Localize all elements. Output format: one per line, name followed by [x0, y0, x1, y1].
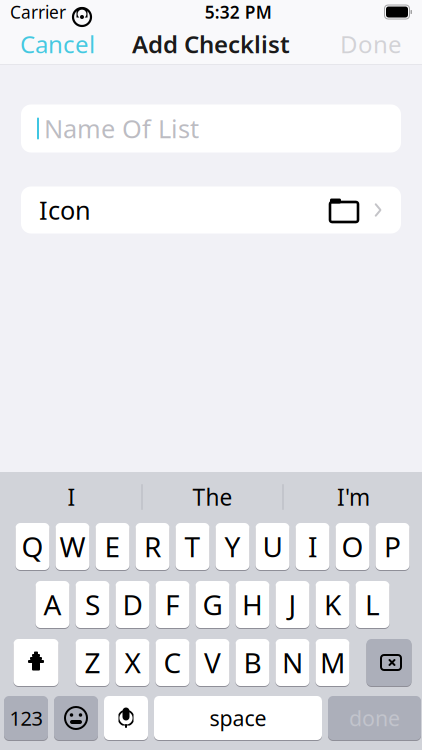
button[interactable]: The: [142, 475, 282, 519]
staticText: U: [262, 528, 282, 565]
staticText: Carrier: [10, 0, 66, 23]
staticText: Done: [340, 28, 402, 60]
button[interactable]: F: [155, 580, 189, 629]
staticText: C: [163, 644, 181, 681]
button[interactable]: M: [315, 638, 349, 687]
button[interactable]: Icon: [21, 186, 401, 233]
staticText: N: [282, 644, 303, 681]
staticText: Q: [21, 528, 43, 565]
staticText: M: [320, 644, 345, 681]
staticText: G: [202, 586, 222, 623]
staticText: 5:32 PM: [205, 0, 272, 23]
staticText: X: [124, 644, 140, 681]
staticText: O: [341, 528, 363, 565]
staticText: Icon: [39, 193, 91, 227]
staticText: I'm: [337, 482, 370, 512]
button[interactable]: E: [95, 522, 129, 571]
staticText: D: [122, 586, 142, 623]
staticText: F: [165, 586, 180, 623]
button[interactable]: H: [235, 580, 269, 629]
button[interactable]: I'm: [283, 475, 422, 519]
staticText: Z: [84, 644, 100, 681]
staticText: B: [243, 644, 261, 681]
button[interactable]: O: [335, 522, 369, 571]
button[interactable]: done: [328, 695, 421, 741]
button[interactable]: Shift: [13, 638, 58, 687]
button[interactable]: I: [295, 522, 329, 571]
button[interactable]: V: [195, 638, 229, 687]
staticText: The: [192, 482, 232, 512]
button[interactable]: Delete: [366, 638, 411, 687]
staticText: V: [204, 644, 221, 681]
staticText: A: [43, 586, 61, 623]
button[interactable]: space: [154, 695, 322, 741]
button[interactable]: Y: [215, 522, 249, 571]
staticText: done: [349, 704, 400, 732]
button[interactable]: 123: [4, 695, 48, 741]
button[interactable]: Done: [326, 24, 416, 64]
staticText: J: [288, 586, 296, 623]
staticText: S: [85, 586, 100, 623]
button[interactable]: D: [115, 580, 149, 629]
staticText: Add Checklist: [132, 28, 290, 60]
button[interactable]: P: [375, 522, 409, 571]
staticText: W: [59, 528, 85, 565]
staticText: 123: [9, 705, 42, 731]
staticText: E: [104, 528, 120, 565]
button[interactable]: Cancel: [6, 24, 109, 64]
button[interactable]: W: [55, 522, 89, 571]
staticText: I: [308, 528, 317, 565]
staticText: space: [209, 704, 266, 732]
button[interactable]: I: [1, 475, 141, 519]
button[interactable]: G: [195, 580, 229, 629]
button[interactable]: T: [175, 522, 209, 571]
staticText: I: [67, 482, 75, 512]
button[interactable]: Emoji: [54, 695, 98, 741]
button[interactable]: J: [275, 580, 309, 629]
button[interactable]: Q: [15, 522, 49, 571]
button[interactable]: S: [75, 580, 109, 629]
staticText: R: [144, 528, 161, 565]
staticText: H: [242, 586, 263, 623]
button[interactable]: B: [235, 638, 269, 687]
button[interactable]: C: [155, 638, 189, 687]
staticText: T: [184, 528, 200, 565]
staticText: Y: [224, 528, 240, 565]
button[interactable]: L: [355, 580, 389, 629]
button[interactable]: A: [35, 580, 69, 629]
button[interactable]: Z: [75, 638, 109, 687]
staticText: Cancel: [20, 28, 95, 60]
button[interactable]: X: [115, 638, 149, 687]
staticText: P: [384, 528, 401, 565]
button[interactable]: K: [315, 580, 349, 629]
button[interactable]: U: [255, 522, 289, 571]
button[interactable]: Dictate: [104, 695, 148, 741]
staticText: K: [324, 586, 341, 623]
staticText: L: [365, 586, 380, 623]
button[interactable]: N: [275, 638, 309, 687]
staticText: Name Of List: [44, 112, 199, 145]
button[interactable]: R: [135, 522, 169, 571]
